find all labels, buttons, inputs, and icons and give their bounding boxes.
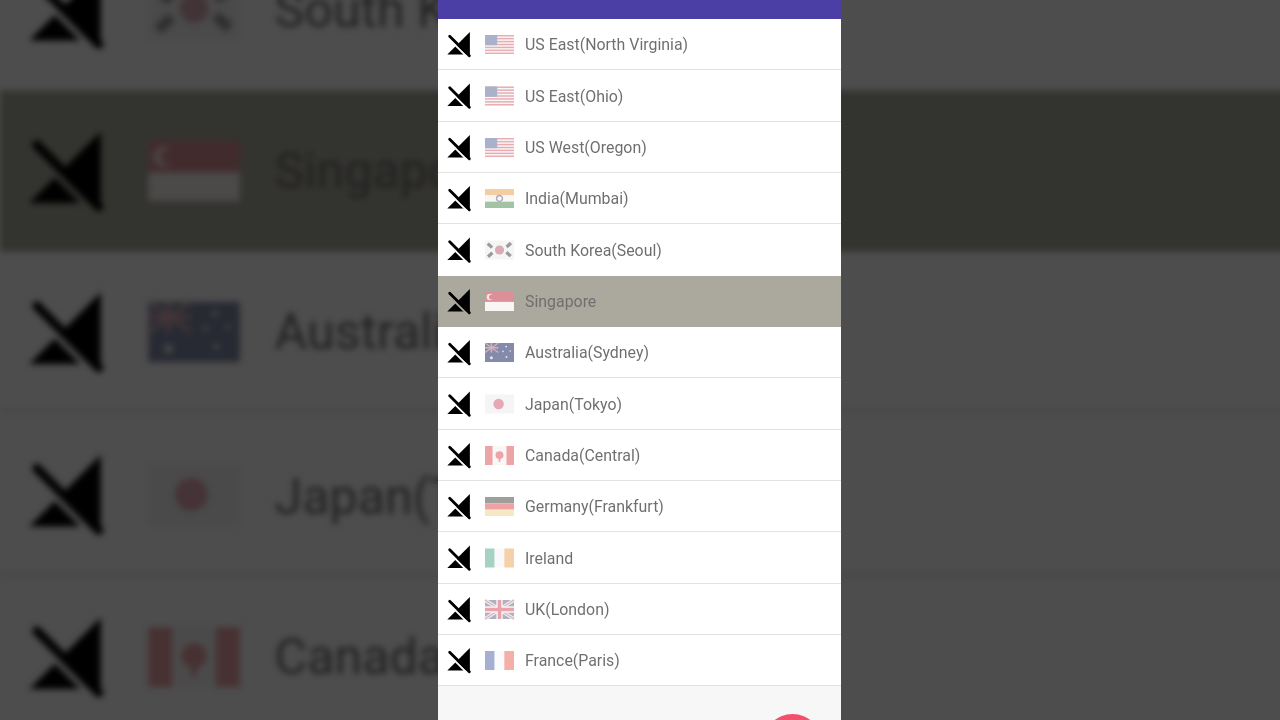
- button[interactable]: India(Mumbai): [438, 173, 841, 224]
- staticText: Ireland: [525, 549, 574, 568]
- button[interactable]: Australia(Sydney): [438, 327, 841, 378]
- button[interactable]: UK(London): [438, 584, 841, 635]
- button[interactable]: Canada(Central): [438, 430, 841, 481]
- button[interactable]: Japan(Tokyo): [0, 412, 1280, 577]
- staticText: Germany(Frankfurt): [525, 497, 664, 516]
- staticText: France(Paris): [525, 651, 620, 670]
- button[interactable]: Germany(Frankfurt): [438, 481, 841, 532]
- staticText: UK(London): [525, 600, 610, 619]
- button[interactable]: Australia(Sydney): [0, 252, 1280, 413]
- button[interactable]: Singapore: [438, 276, 841, 327]
- staticText: Canada(Central): [275, 627, 641, 687]
- button[interactable]: France(Paris): [438, 635, 841, 686]
- button[interactable]: US West(Oregon): [438, 122, 841, 173]
- staticText: US East(Ohio): [525, 87, 624, 106]
- button[interactable]: Singapore: [0, 91, 1280, 252]
- button[interactable]: US East(Ohio): [438, 70, 841, 122]
- staticText: Japan(Tokyo): [275, 466, 584, 526]
- staticText: Australia(Sydney): [525, 343, 649, 362]
- staticText: Australia(Sydney): [275, 302, 666, 362]
- staticText: Singapore: [275, 141, 502, 201]
- staticText: South Korea(Seoul): [275, 0, 707, 40]
- button[interactable]: Japan(Tokyo): [438, 378, 841, 430]
- button[interactable]: South Korea(Seoul): [438, 224, 841, 276]
- staticText: Singapore: [525, 292, 597, 311]
- button[interactable]: Ireland: [438, 532, 841, 584]
- button[interactable]: Canada(Central): [0, 577, 1280, 720]
- staticText: Japan(Tokyo): [525, 395, 623, 414]
- staticText: South Korea(Seoul): [525, 241, 662, 260]
- staticText: US West(Oregon): [525, 138, 647, 157]
- staticText: India(Mumbai): [525, 189, 629, 208]
- staticText: Canada(Central): [525, 446, 641, 465]
- button[interactable]: US East(North Virginia): [438, 19, 841, 70]
- button[interactable]: South Korea(Seoul): [0, 0, 1280, 91]
- staticText: US East(North Virginia): [525, 35, 689, 54]
- button[interactable]: Add: [763, 714, 822, 720]
